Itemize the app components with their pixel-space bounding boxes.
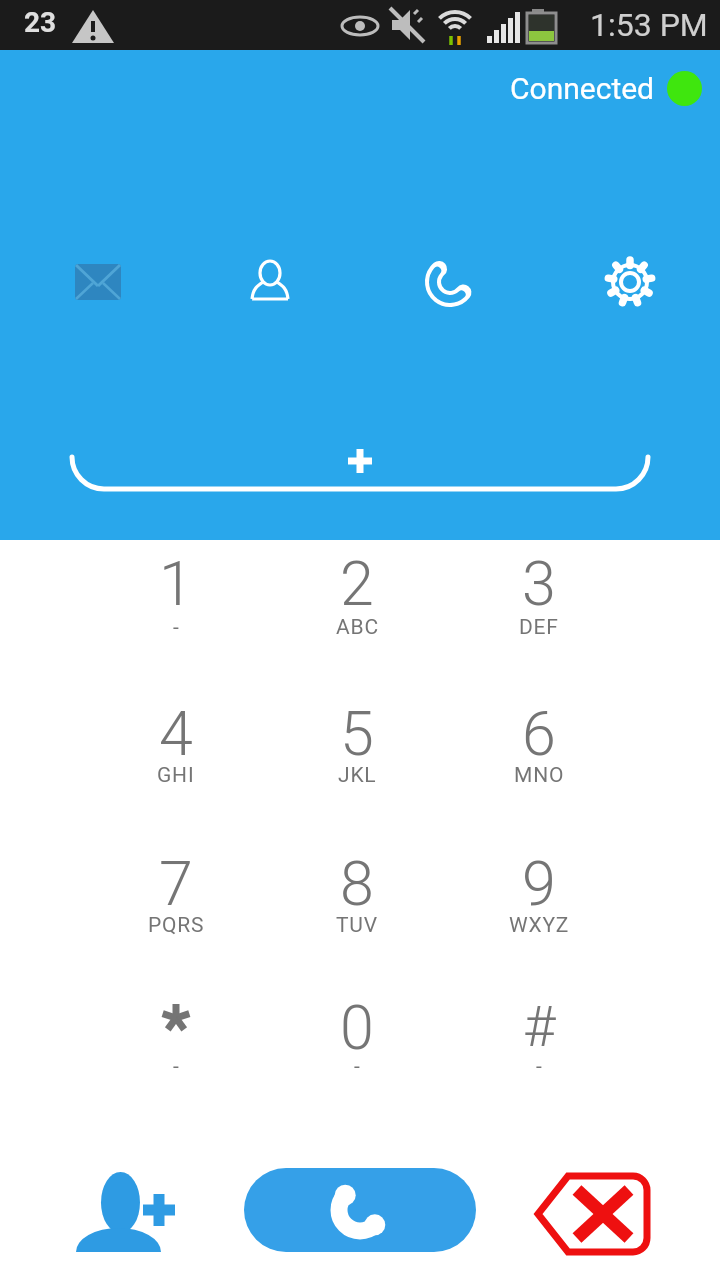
button[interactable]: - xyxy=(84,979,268,1129)
staticText: 0 xyxy=(340,992,374,1063)
button[interactable] xyxy=(540,252,720,312)
staticText: DEF xyxy=(519,615,559,640)
staticText: 7 xyxy=(159,848,193,919)
button[interactable]: 4 xyxy=(84,685,268,835)
button[interactable]: 8 xyxy=(265,835,449,985)
staticText: MNO xyxy=(514,763,565,788)
staticText: - xyxy=(536,1054,543,1079)
staticText: 8 xyxy=(340,848,374,919)
button[interactable]: 5 xyxy=(265,685,449,835)
staticText: 1:53 PM xyxy=(590,6,708,44)
button[interactable]: 2 xyxy=(265,535,449,685)
button[interactable] xyxy=(360,252,540,312)
staticText: JKL xyxy=(338,763,377,788)
button[interactable]: 9 xyxy=(447,835,631,985)
staticText: TUV xyxy=(336,913,378,938)
staticText: 4 xyxy=(159,698,193,769)
staticText: 2 xyxy=(340,548,374,619)
button[interactable] xyxy=(530,1165,655,1265)
staticText: - xyxy=(173,1054,180,1079)
staticText: 23 xyxy=(24,6,57,39)
staticText: Connected xyxy=(510,71,655,106)
staticText: PQRS xyxy=(148,913,205,938)
staticText: # xyxy=(523,994,556,1060)
button[interactable]: 1 xyxy=(84,535,268,685)
button[interactable] xyxy=(0,252,180,312)
button[interactable]: # xyxy=(447,979,631,1129)
button[interactable] xyxy=(70,1160,185,1265)
button[interactable] xyxy=(180,252,360,312)
staticText: 5 xyxy=(340,698,374,769)
staticText: WXYZ xyxy=(509,913,570,938)
button[interactable] xyxy=(244,1168,476,1252)
staticText: 1 xyxy=(159,548,193,619)
staticText: 3 xyxy=(522,548,556,619)
staticText: - xyxy=(354,1054,361,1079)
button[interactable]: 3 xyxy=(447,535,631,685)
button[interactable] xyxy=(0,380,720,460)
staticText: GHI xyxy=(157,763,195,788)
button[interactable] xyxy=(667,71,702,106)
staticText: - xyxy=(173,615,180,640)
staticText: 9 xyxy=(522,848,556,919)
staticText: 6 xyxy=(522,698,556,769)
staticText: ABC xyxy=(336,615,379,640)
button[interactable]: 0 xyxy=(265,979,449,1129)
button[interactable]: 7 xyxy=(84,835,268,985)
button[interactable]: 6 xyxy=(447,685,631,835)
